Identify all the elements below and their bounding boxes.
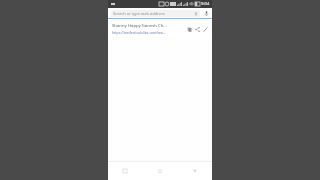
button[interactable]: Recent apps (108, 162, 142, 180)
button[interactable]: Voice search (193, 11, 198, 16)
button[interactable]: Shanny Happy Ganesh Ch... (110, 21, 210, 37)
staticText: Search or type web address (113, 11, 165, 16)
button[interactable]: Copy link (185, 25, 193, 33)
staticText: https://testfestivalulike.com/ww... (112, 30, 166, 35)
staticText: 9:04 (201, 1, 210, 7)
button[interactable]: Edit (201, 25, 209, 33)
button[interactable]: Share (193, 25, 201, 33)
button[interactable]: Back (177, 162, 212, 180)
staticText: Shanny Happy Ganesh Ch... (112, 23, 167, 29)
button[interactable]: Microphone (202, 9, 210, 17)
button[interactable]: Search or type web address (111, 10, 200, 17)
button[interactable]: Home (142, 162, 177, 180)
